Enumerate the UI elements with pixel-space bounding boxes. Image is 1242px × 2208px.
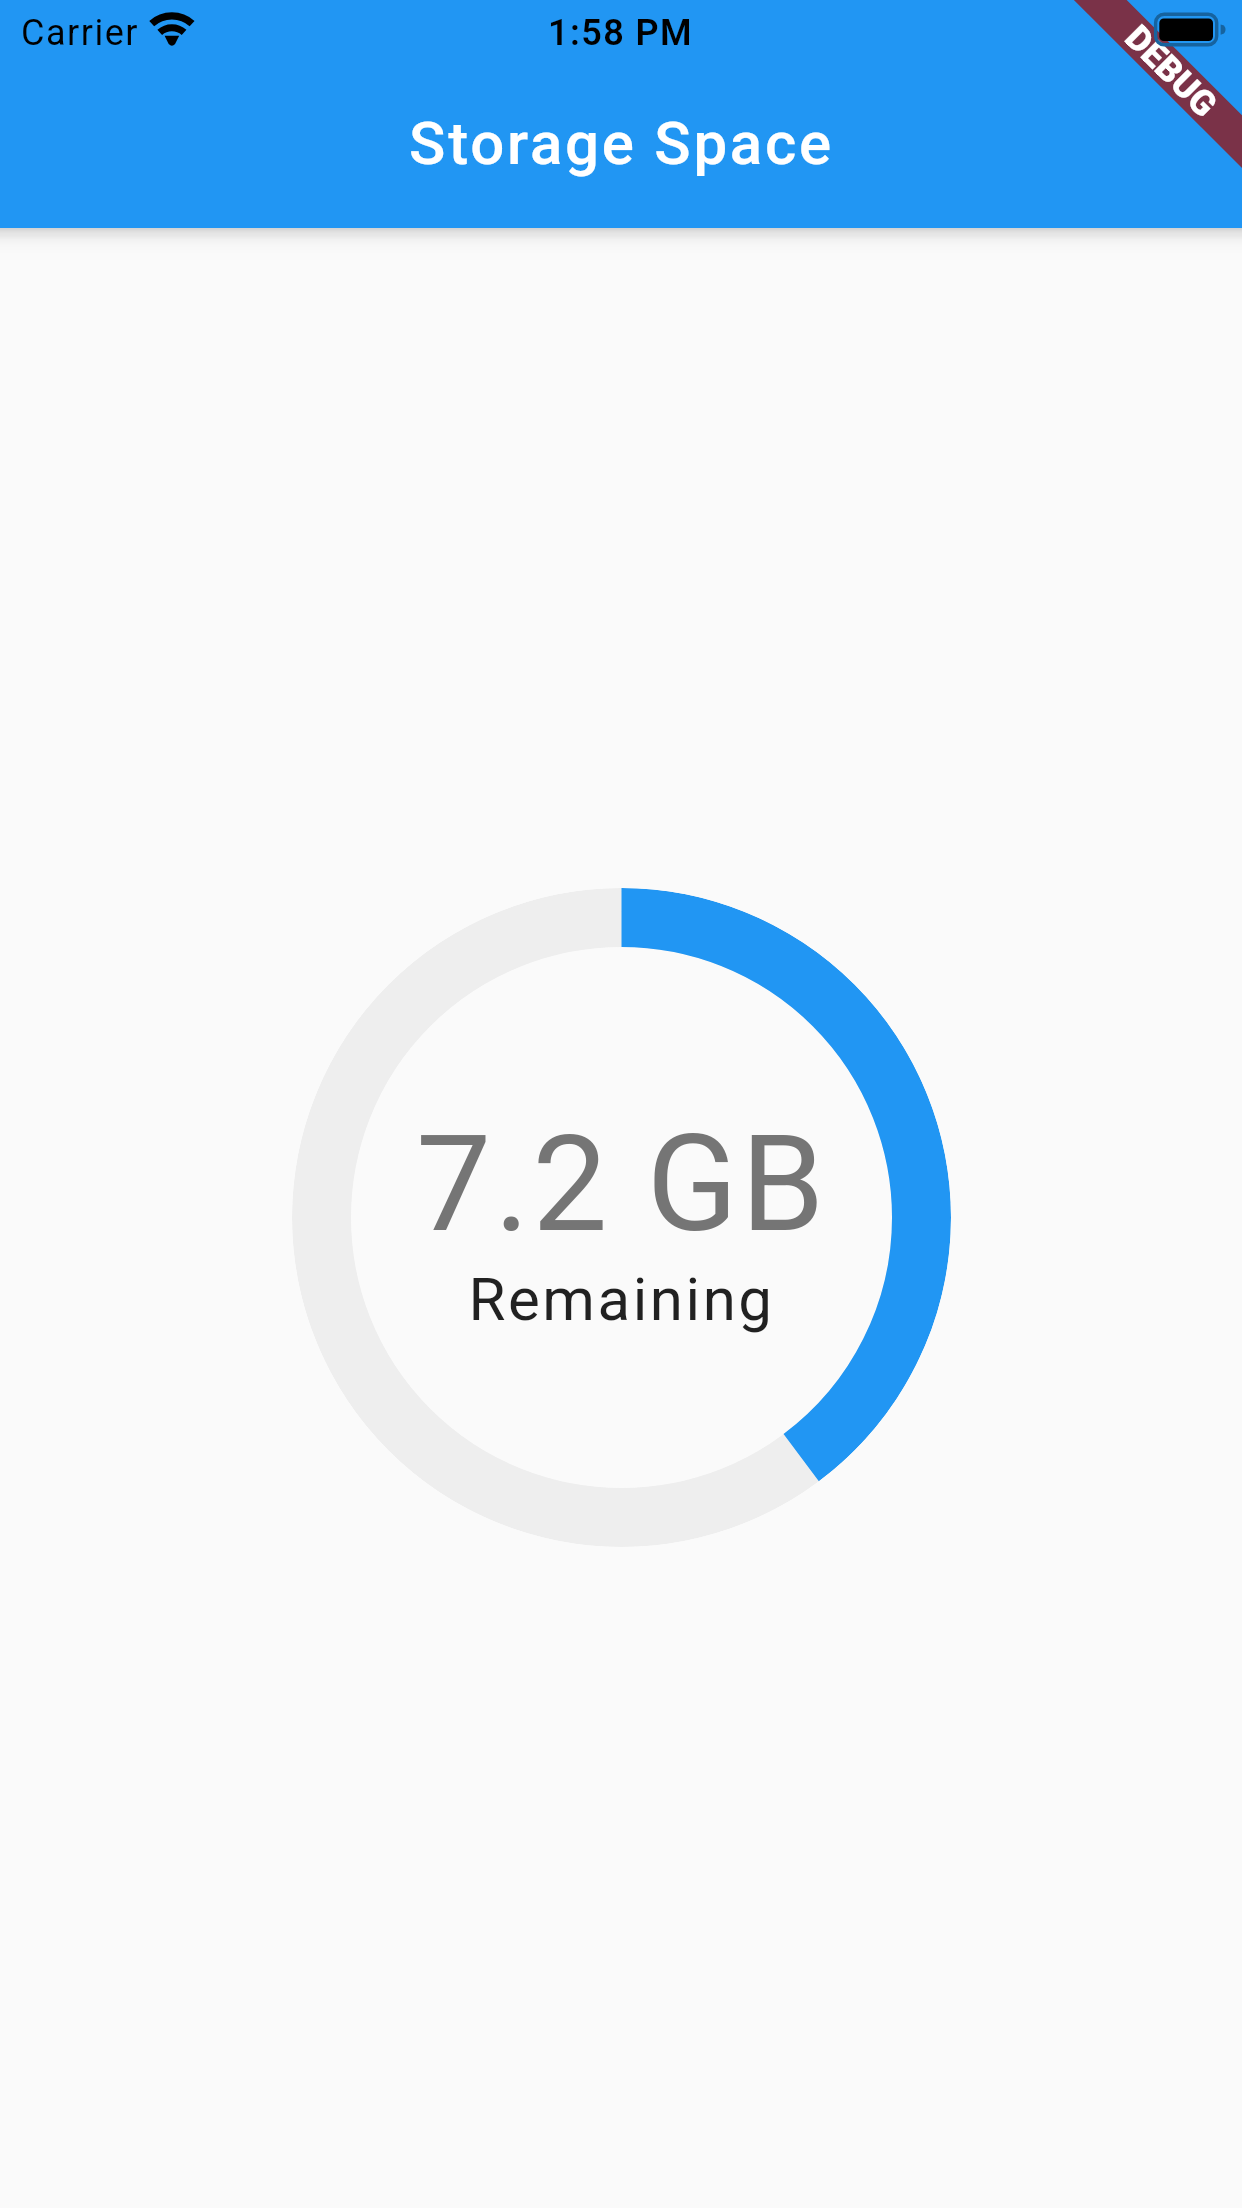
staticText: Carrier [21, 12, 139, 54]
staticText: Remaining [468, 1264, 775, 1334]
staticText: 1:58 PM [548, 12, 693, 54]
staticText: 7.2 GB [416, 1106, 827, 1263]
staticText: Storage Space [409, 108, 834, 178]
button[interactable]: Storage usage: 7.2 GB remaining [292, 888, 951, 1547]
staticText: DEBUG [1117, 17, 1225, 125]
